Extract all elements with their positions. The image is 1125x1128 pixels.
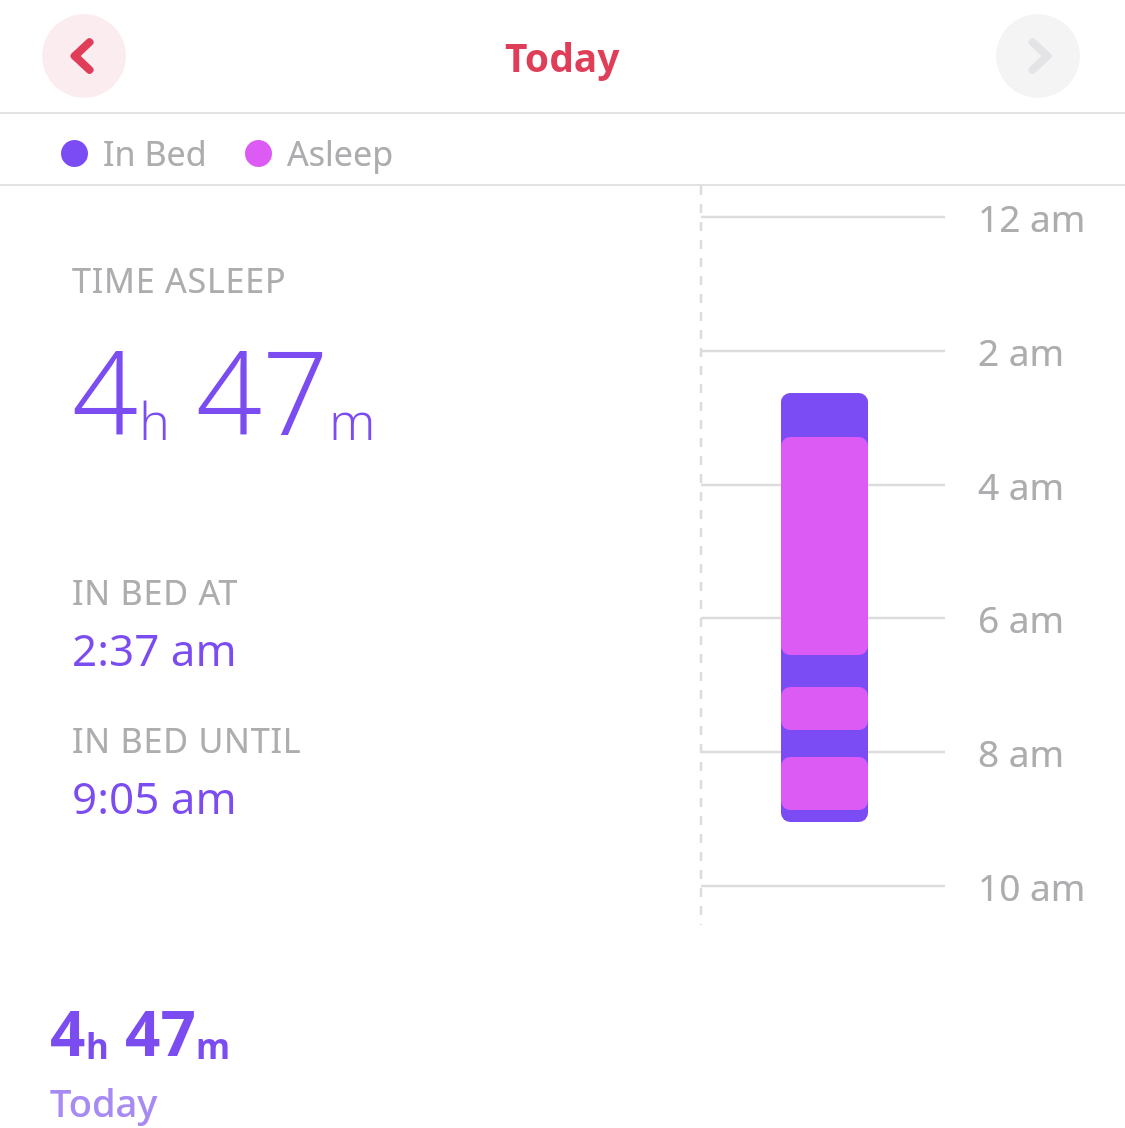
staticText: Asleep bbox=[287, 130, 394, 176]
staticText: m bbox=[329, 384, 376, 455]
staticText: 47 bbox=[196, 311, 329, 469]
staticText: 4 am bbox=[978, 460, 1065, 510]
button[interactable]: Next day bbox=[996, 14, 1080, 98]
staticText: 10 am bbox=[978, 861, 1086, 911]
staticText: m bbox=[196, 1022, 231, 1070]
staticText: 2 am bbox=[978, 326, 1065, 376]
staticText: In Bed bbox=[103, 130, 207, 176]
staticText: IN BED AT bbox=[72, 569, 239, 615]
staticText: 12 am bbox=[978, 192, 1086, 242]
staticText: 47 bbox=[125, 990, 196, 1074]
staticText: Today bbox=[505, 30, 620, 83]
staticText: 9:05 am bbox=[72, 767, 237, 827]
staticText: 8 am bbox=[978, 727, 1065, 777]
staticText: 4 bbox=[50, 990, 86, 1074]
staticText: IN BED UNTIL bbox=[72, 717, 302, 763]
staticText: TIME ASLEEP bbox=[72, 257, 287, 303]
staticText: Today bbox=[50, 1076, 158, 1128]
staticText: 2:37 am bbox=[72, 619, 237, 679]
button[interactable]: Previous day bbox=[42, 14, 126, 98]
staticText: 6 am bbox=[978, 593, 1065, 643]
staticText: 4 bbox=[72, 311, 139, 469]
staticText: h bbox=[86, 1022, 109, 1070]
staticText: h bbox=[139, 384, 170, 455]
